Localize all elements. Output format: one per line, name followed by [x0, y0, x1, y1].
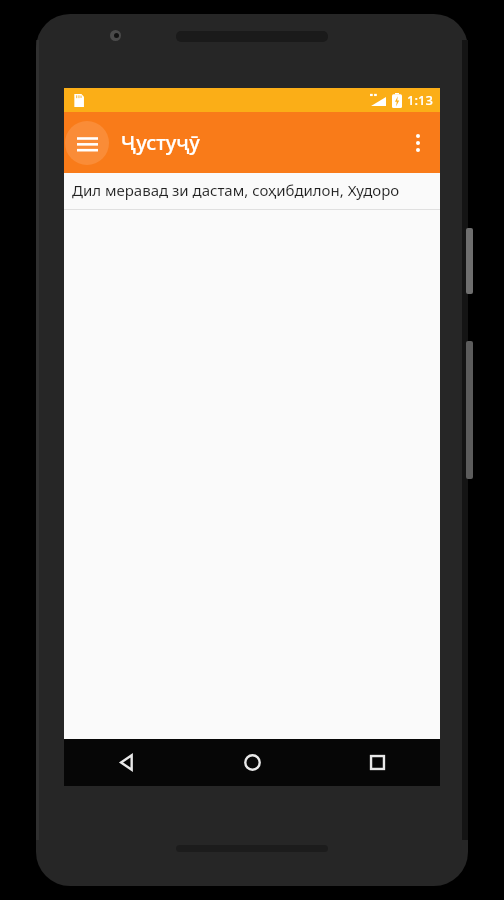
button[interactable]: Дил меравад зи дастам, соҳибдилон, Худор…: [64, 173, 440, 209]
button[interactable]: More options: [396, 121, 440, 165]
other: Volume: [466, 341, 473, 479]
button[interactable]: Back: [64, 739, 190, 786]
button[interactable]: Open navigation menu: [65, 121, 109, 165]
staticText: 1:13: [407, 91, 433, 109]
staticText: Дил меравад зи дастам, соҳибдилон, Худор…: [72, 180, 400, 200]
button[interactable]: Recent apps: [315, 739, 440, 786]
other: Power: [466, 228, 473, 294]
button[interactable]: Home: [190, 739, 315, 786]
staticText: Ҷустуҷӯ: [121, 129, 200, 156]
